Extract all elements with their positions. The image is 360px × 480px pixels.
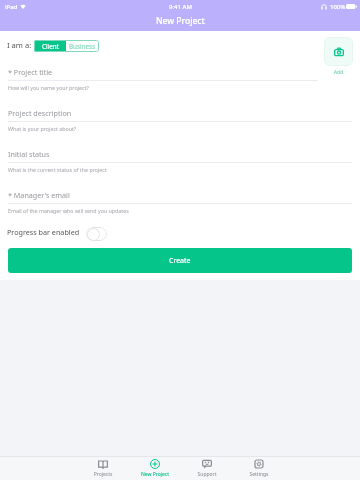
staticText: Progress bar enabled (7, 227, 80, 237)
staticText: * Manager's email (8, 190, 70, 200)
staticText: Initial status (8, 149, 50, 159)
button[interactable]: Support (181, 457, 233, 480)
staticText: I am a: (7, 40, 32, 50)
staticText: What is your project about? (8, 125, 77, 132)
staticText: Settings (233, 471, 285, 478)
button[interactable]: Client (34, 40, 66, 52)
staticText: Business (69, 42, 96, 51)
staticText: Support (181, 471, 233, 478)
button[interactable]: Add photo (324, 37, 353, 66)
staticText: 9:41 AM (169, 3, 192, 11)
staticText: What is the current status of the projec… (8, 166, 107, 173)
staticText: Email of the manager who will send you u… (8, 207, 129, 214)
staticText: New Project (156, 15, 205, 27)
button[interactable]: Settings (233, 457, 285, 480)
staticText: 100% (330, 3, 346, 11)
button[interactable]: Create (8, 248, 352, 273)
staticText: How will you name your project? (8, 84, 89, 91)
button[interactable]: New Project (129, 457, 181, 480)
button[interactable]: Business (66, 40, 99, 52)
button[interactable]: Projects (77, 457, 129, 480)
staticText: Project description (8, 108, 72, 118)
button[interactable]: Progress bar toggle (86, 227, 107, 241)
staticText: Create (169, 256, 191, 266)
staticText: iPad (5, 3, 18, 11)
staticText: Projects (77, 471, 129, 478)
staticText: * Project title (8, 67, 53, 77)
staticText: Add (324, 68, 353, 75)
staticText: Client (42, 42, 59, 51)
staticText: New Project (129, 471, 181, 478)
